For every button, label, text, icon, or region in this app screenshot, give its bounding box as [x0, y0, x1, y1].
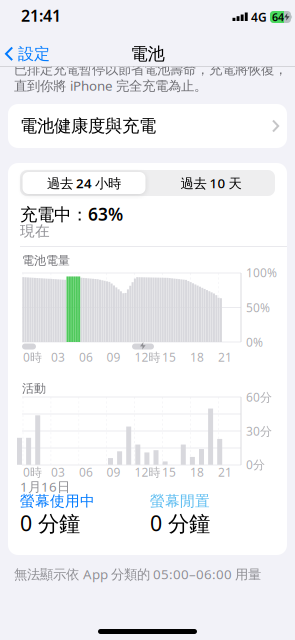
staticText: 15: [162, 349, 176, 365]
staticText: 直到你將 iPhone 完全充電為止。: [14, 77, 207, 94]
staticText: 0 分鐘: [20, 509, 80, 537]
staticText: 03: [51, 464, 65, 480]
staticText: 21: [218, 349, 232, 365]
button[interactable]: 過去 24 小時: [21, 170, 146, 196]
staticText: 充電中：63%: [20, 202, 123, 225]
button[interactable]: 返回設定: [6, 39, 66, 69]
staticText: 0 分鐘: [150, 509, 210, 537]
button[interactable]: 電池健康度與充電: [8, 104, 287, 148]
staticText: 09: [106, 464, 120, 480]
staticText: 螢幕閒置: [150, 492, 210, 510]
staticText: 螢幕使用中: [20, 492, 95, 510]
staticText: 50%: [246, 299, 270, 315]
staticText: 電池電量: [22, 253, 70, 268]
staticText: 09: [106, 349, 120, 365]
staticText: 18: [190, 349, 204, 365]
staticText: 電池健康度與充電: [20, 115, 156, 137]
staticText: 設定: [18, 44, 50, 64]
staticText: 21:41: [21, 5, 61, 26]
staticText: 21: [218, 464, 232, 480]
staticText: 0時: [23, 464, 42, 480]
staticText: 03: [51, 349, 65, 365]
staticText: 15: [162, 464, 176, 480]
staticText: 電池: [130, 43, 164, 65]
staticText: 過去 24 小時: [47, 174, 121, 192]
staticText: 30分: [246, 423, 272, 439]
staticText: 64: [272, 10, 284, 24]
staticText: 0分: [246, 456, 265, 472]
staticText: 100%: [246, 264, 277, 280]
staticText: 0%: [246, 334, 263, 350]
staticText: 12時: [134, 349, 160, 365]
staticText: 18: [190, 464, 204, 480]
button[interactable]: 過去 10 天: [148, 170, 273, 196]
staticText: 1月16日: [20, 478, 70, 495]
staticText: 06: [79, 464, 93, 480]
staticText: 0時: [23, 349, 42, 365]
staticText: 60分: [246, 389, 272, 405]
staticText: 4G: [251, 9, 267, 25]
staticText: 現在: [20, 222, 50, 240]
staticText: 活動: [22, 381, 46, 396]
staticText: 已排定充電暫停以節省電池壽命，充電將恢復，: [14, 61, 287, 78]
staticText: 06: [79, 349, 93, 365]
staticText: 12時: [134, 464, 160, 480]
staticText: 過去 10 天: [180, 174, 241, 192]
staticText: 無法顯示依 App 分類的 05:00–06:00 用量: [14, 565, 261, 583]
